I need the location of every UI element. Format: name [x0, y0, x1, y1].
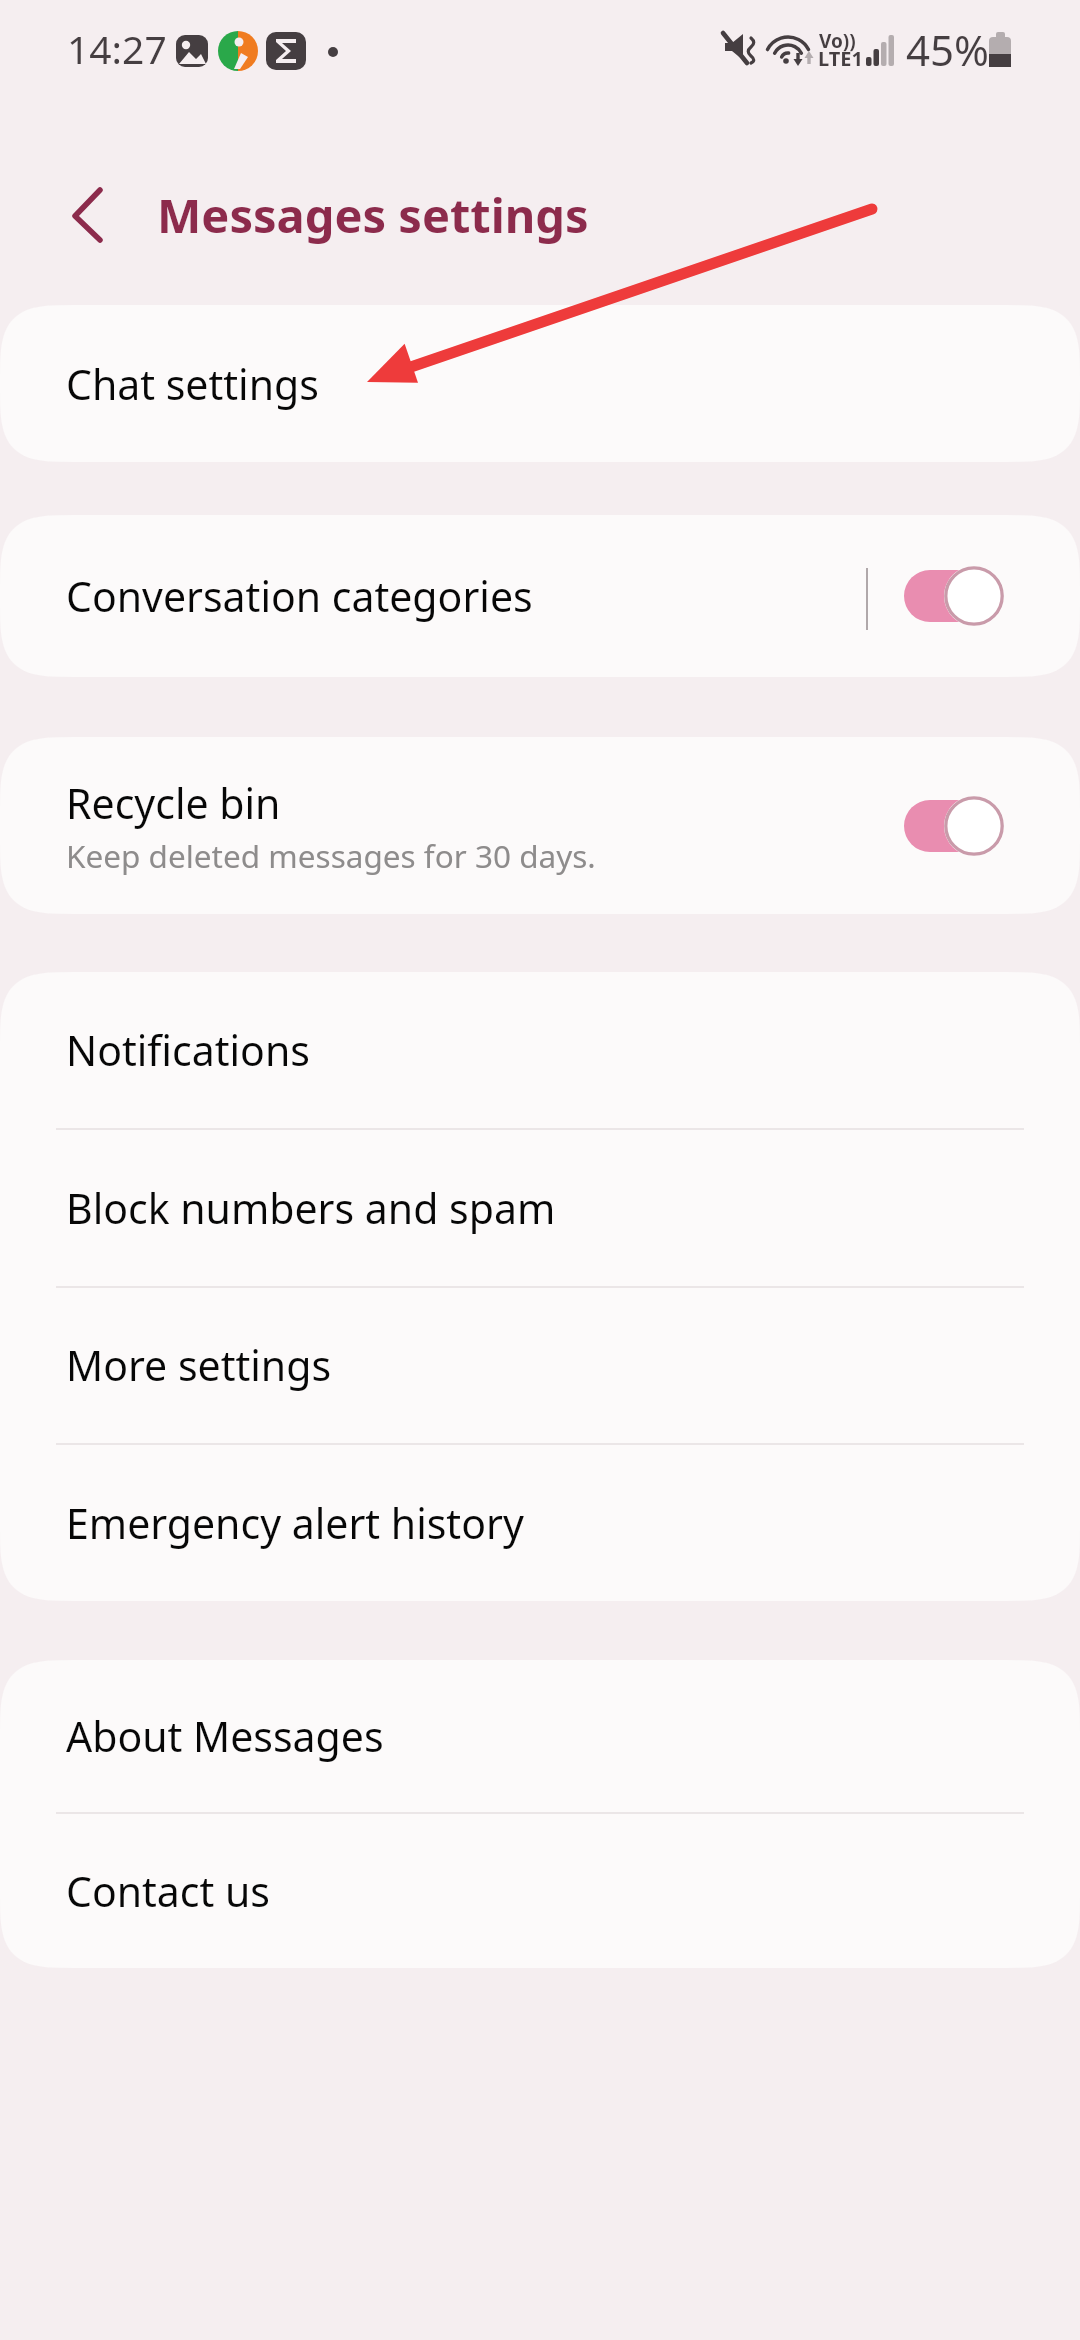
staticText: Recycle bin — [66, 775, 281, 831]
button[interactable]: About Messages — [0, 1660, 1080, 1811]
button[interactable]: Toggle — [896, 791, 1020, 861]
staticText: LTE1 — [818, 45, 863, 72]
button[interactable]: Contact us — [0, 1814, 1080, 1968]
staticText: Keep deleted messages for 30 days. — [66, 834, 596, 877]
button[interactable]: Recycle bin — [0, 737, 1080, 914]
staticText: More settings — [66, 1337, 332, 1393]
staticText: Block numbers and spam — [66, 1180, 556, 1236]
staticText: Chat settings — [66, 356, 319, 412]
staticText: Notifications — [66, 1022, 310, 1078]
staticText: Vo)) — [819, 28, 856, 54]
button[interactable]: More settings — [0, 1288, 1080, 1442]
staticText: About Messages — [66, 1708, 384, 1764]
staticText: 14:27 — [67, 22, 167, 75]
staticText: Conversation categories — [66, 568, 533, 624]
button[interactable]: Conversation categories — [0, 515, 1080, 677]
button[interactable]: Back — [48, 178, 128, 258]
button[interactable]: Chat settings — [0, 305, 1080, 462]
staticText: Emergency alert history — [66, 1495, 524, 1551]
button[interactable]: Emergency alert history — [0, 1445, 1080, 1601]
button[interactable]: Notifications — [0, 972, 1080, 1127]
staticText: Messages settings — [157, 183, 589, 247]
button[interactable]: Block numbers and spam — [0, 1130, 1080, 1285]
staticText: Contact us — [66, 1863, 270, 1919]
button[interactable]: Toggle — [896, 561, 1020, 631]
staticText: 45% — [906, 21, 989, 78]
